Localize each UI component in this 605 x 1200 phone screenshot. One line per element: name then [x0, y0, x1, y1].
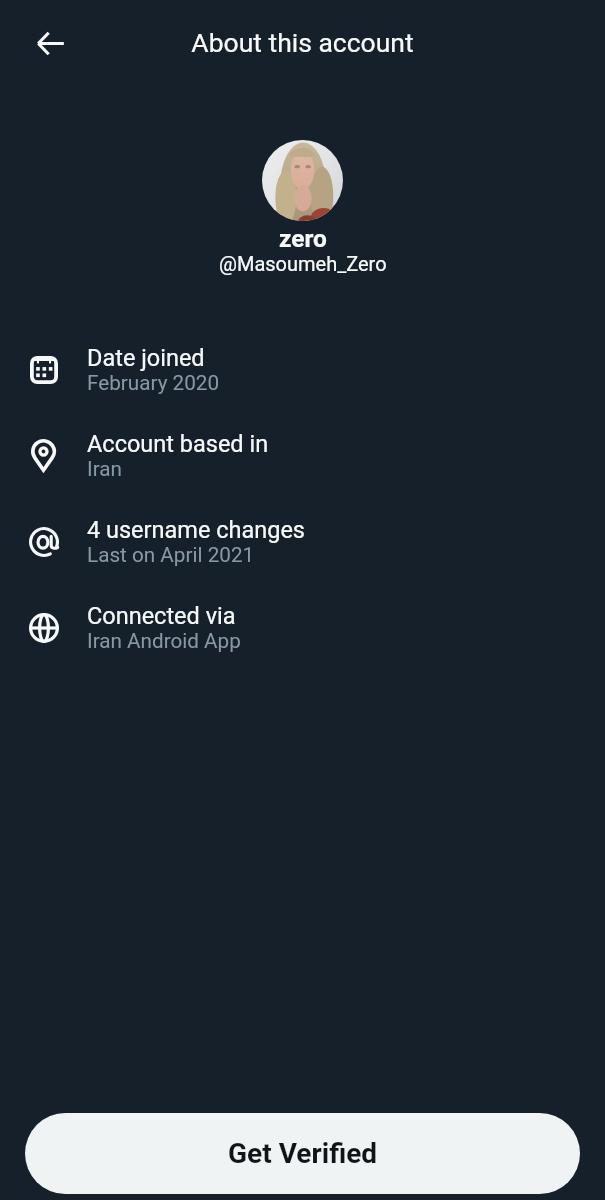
staticText: February 2020 — [87, 371, 220, 395]
staticText: zero — [279, 224, 327, 253]
staticText: Last on April 2021 — [87, 543, 255, 567]
button[interactable]: Date joined — [0, 344, 605, 430]
button[interactable]: 4 username changes — [0, 516, 605, 602]
staticText: Connected via — [87, 602, 236, 630]
staticText: @Masoumeh_Zero — [219, 252, 387, 275]
staticText: Iran — [87, 457, 122, 481]
staticText: Account based in — [87, 430, 269, 458]
staticText: 4 username changes — [87, 516, 305, 544]
staticText: Iran Android App — [87, 629, 241, 653]
button[interactable]: Connected via — [0, 602, 605, 688]
button[interactable]: Back — [22, 15, 78, 71]
button[interactable]: Account based in — [0, 430, 605, 516]
button[interactable]: Get Verified — [25, 1113, 580, 1194]
staticText: Get Verified — [228, 1137, 378, 1170]
staticText: Date joined — [87, 344, 205, 372]
staticText: About this account — [191, 27, 414, 58]
